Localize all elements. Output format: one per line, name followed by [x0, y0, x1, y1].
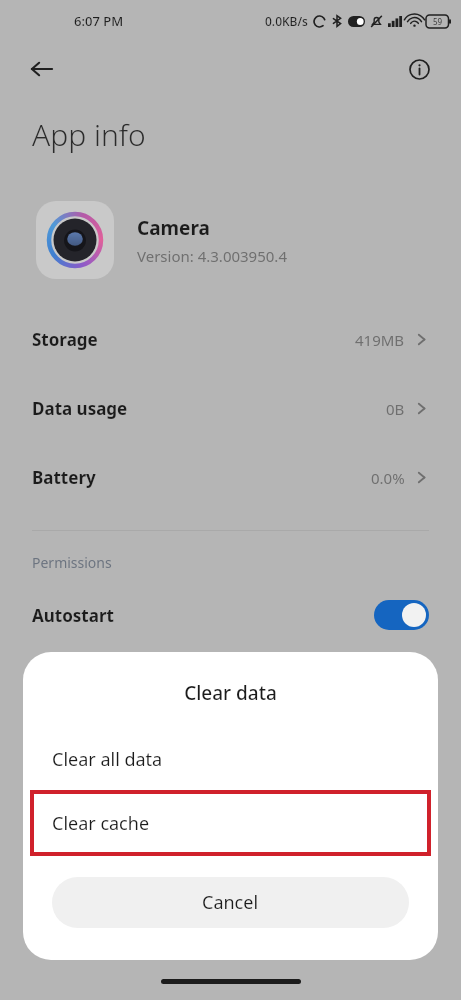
staticText: Cancel	[202, 890, 259, 915]
button[interactable]: Autostart toggle	[374, 600, 429, 630]
staticText: App info	[32, 114, 146, 155]
button[interactable]: Data usage	[0, 374, 461, 443]
button[interactable]: Battery	[0, 443, 461, 512]
button[interactable]: Clear all data	[23, 728, 438, 790]
staticText: 59	[433, 16, 443, 27]
staticText: Storage	[32, 328, 98, 351]
staticText: Camera	[137, 215, 210, 241]
button[interactable]: Back	[20, 47, 64, 91]
staticText: Permissions	[32, 553, 112, 572]
button[interactable]: Storage	[0, 305, 461, 374]
staticText: Clear all data	[52, 747, 163, 772]
button[interactable]: Clear cache	[30, 790, 431, 856]
button[interactable]: Cancel	[52, 877, 409, 928]
staticText: Version: 4.3.003950.4	[137, 246, 287, 266]
staticText: Data usage	[32, 397, 128, 420]
staticText: Battery	[32, 466, 96, 489]
staticText: 0B	[386, 399, 405, 419]
staticText: Autostart	[32, 604, 114, 627]
button[interactable]: Help	[397, 47, 441, 91]
staticText: Clear cache	[52, 811, 150, 836]
staticText: 0.0%	[371, 468, 405, 488]
staticText: 0.0KB/s	[265, 13, 308, 29]
button[interactable]: Autostart	[0, 592, 461, 638]
staticText: 419MB	[355, 330, 405, 350]
staticText: Clear data	[23, 680, 438, 706]
staticText: 6:07 PM	[74, 12, 124, 30]
